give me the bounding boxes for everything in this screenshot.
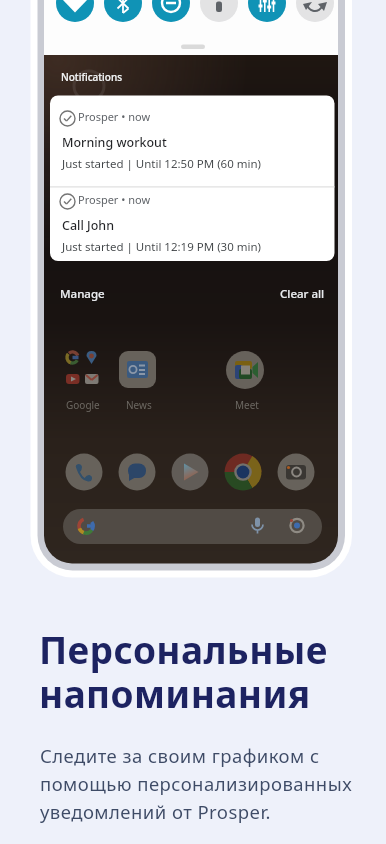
staticText: Prosper • now [78, 192, 151, 207]
staticText: Morning workout [62, 134, 167, 151]
staticText: Clear all [280, 286, 325, 302]
staticText: Prosper • now [78, 109, 151, 124]
staticText: Just started | Until 12:19 PM (30 min) [62, 239, 262, 255]
staticText: Следите за своим графиком с помощью перс… [40, 743, 353, 824]
staticText: Just started | Until 12:50 PM (60 min) [62, 156, 262, 172]
staticText: Google [66, 398, 100, 412]
staticText: Manage [60, 286, 105, 302]
button[interactable]: Clear all [276, 282, 321, 298]
staticText: Notifications [61, 70, 123, 84]
staticText: Call John [62, 217, 115, 234]
staticText: News [126, 398, 152, 412]
staticText: Meet [235, 398, 259, 412]
staticText: Персональные напоминания [39, 624, 328, 718]
button[interactable]: Manage [56, 282, 101, 298]
